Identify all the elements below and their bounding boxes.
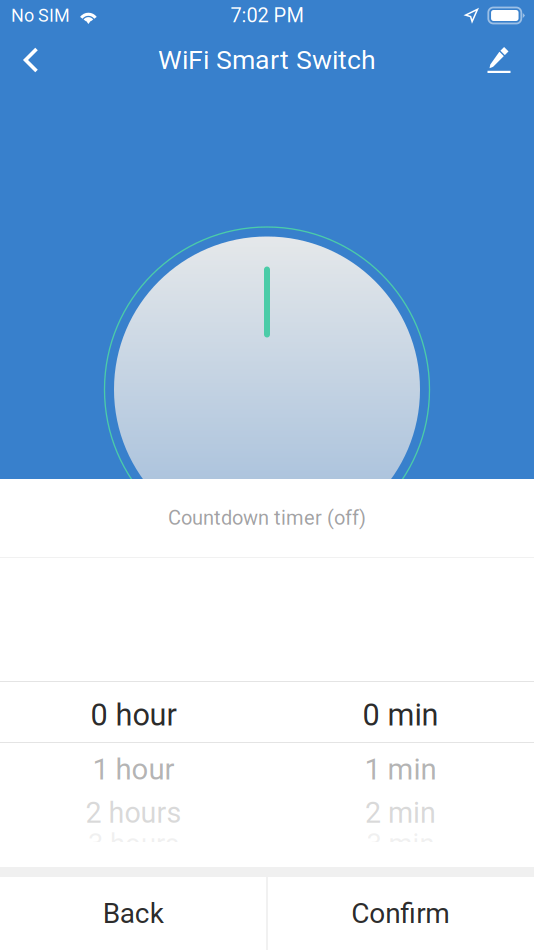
staticText: Back: [103, 897, 164, 930]
button[interactable]: Back: [8, 36, 54, 84]
staticText: 2 hours: [85, 796, 181, 830]
staticText: 2 min: [365, 796, 436, 830]
button[interactable]: Confirm: [267, 877, 534, 950]
staticText: 3 hours: [88, 828, 179, 860]
staticText: 7:02 PM: [230, 4, 303, 27]
staticText: 0 min: [362, 697, 438, 733]
staticText: No SIM: [11, 5, 70, 26]
staticText: 3 min: [366, 828, 434, 860]
staticText: Confirm: [351, 897, 450, 930]
button[interactable]: Power: [102, 0, 432, 330]
staticText: 1 min: [364, 752, 436, 787]
staticText: 0 hour: [90, 697, 176, 733]
staticText: 1 hour: [92, 752, 174, 787]
staticText: WiFi Smart Switch: [158, 44, 376, 76]
staticText: Countdown timer (off): [168, 506, 366, 530]
button[interactable]: Back: [0, 877, 266, 950]
button[interactable]: Edit name: [476, 36, 522, 84]
